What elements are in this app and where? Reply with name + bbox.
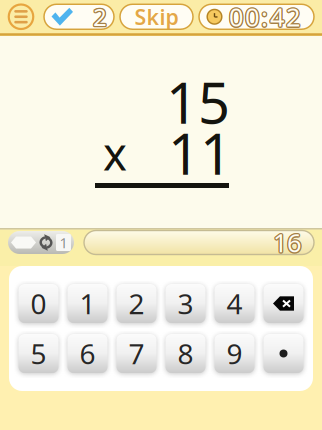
staticText: 0 — [244, 1, 258, 34]
staticText: 9 — [226, 335, 242, 372]
staticText: 16 — [272, 226, 300, 259]
staticText: 7 — [128, 335, 144, 372]
staticText: 2 — [285, 0, 299, 33]
staticText: 0 — [246, 0, 260, 33]
staticText: 16 — [272, 227, 300, 260]
button[interactable]: 2 — [116, 284, 156, 323]
staticText: 0 — [228, 0, 242, 33]
button[interactable]: Menu — [8, 4, 34, 30]
staticText: 15 — [166, 65, 230, 139]
staticText: 4 — [269, 0, 283, 33]
staticText: 4 — [270, 0, 284, 33]
staticText: 0 — [228, 1, 242, 34]
staticText: 16 — [273, 227, 301, 261]
button[interactable]: 8 — [165, 334, 205, 373]
staticText: 0 — [230, 0, 244, 33]
staticText: 2 — [92, 1, 106, 33]
staticText: 0 — [229, 1, 243, 35]
staticText: 0 — [230, 1, 244, 34]
staticText: 2 — [287, 1, 301, 34]
staticText: : — [262, 0, 269, 33]
staticText: 2 — [94, 1, 108, 33]
staticText: 16 — [273, 226, 301, 259]
button[interactable]: Delete — [263, 284, 303, 323]
staticText: 2 — [92, 0, 106, 32]
button[interactable]: 0 — [18, 284, 58, 323]
button[interactable]: 5 — [18, 334, 58, 373]
button[interactable]: Skip — [120, 4, 193, 29]
staticText: 0 — [244, 0, 258, 33]
staticText: : — [262, 1, 269, 34]
staticText: 3 — [177, 285, 193, 322]
staticText: 2 — [286, 0, 300, 33]
staticText: 4 — [269, 1, 283, 34]
staticText: 2 — [93, 1, 107, 33]
staticText: 11 — [168, 116, 232, 190]
staticText: 0 — [245, 1, 259, 35]
staticText: 0 — [229, 0, 243, 32]
staticText: 4 — [271, 1, 285, 34]
button[interactable]: 1 — [67, 284, 107, 323]
button[interactable]: 4 — [214, 284, 254, 323]
staticText: 0 — [228, 0, 242, 33]
staticText: : — [261, 1, 268, 35]
staticText: 2 — [286, 1, 300, 35]
staticText: 0 — [30, 285, 46, 322]
staticText: 2 — [93, 2, 107, 34]
staticText: 0 — [230, 0, 244, 33]
staticText: 2 — [287, 0, 301, 33]
staticText: : — [260, 0, 267, 33]
staticText: 2 — [93, 0, 107, 31]
button[interactable]: Swap operands — [8, 231, 74, 254]
button[interactable]: Decimal point — [263, 334, 303, 373]
staticText: 4 — [269, 0, 283, 33]
staticText: 4 — [270, 1, 284, 35]
staticText: 1 — [59, 233, 67, 252]
staticText: 5 — [30, 335, 46, 372]
button[interactable]: 9 — [214, 334, 254, 373]
button[interactable]: Timer — [199, 4, 314, 29]
staticText: 2 — [128, 285, 144, 322]
button[interactable]: 6 — [67, 334, 107, 373]
staticText: 16 — [273, 224, 301, 258]
staticText: x — [103, 123, 127, 183]
staticText: 2 — [92, 2, 106, 34]
staticText: 16 — [274, 225, 302, 258]
staticText: 2 — [286, 0, 300, 32]
button[interactable]: 3 — [165, 284, 205, 323]
staticText: 4 — [270, 0, 284, 32]
staticText: : — [262, 0, 269, 33]
staticText: 2 — [287, 0, 301, 33]
staticText: 16 — [272, 225, 300, 258]
staticText: 6 — [79, 335, 95, 372]
staticText: 2 — [285, 0, 299, 33]
staticText: 0 — [244, 0, 258, 33]
staticText: 16 — [274, 227, 302, 260]
staticText: 4 — [271, 0, 285, 33]
staticText: Skip — [134, 3, 178, 31]
staticText: 16 — [274, 226, 302, 259]
staticText: 0 — [246, 0, 260, 33]
staticText: 4 — [271, 0, 285, 33]
staticText: 2 — [285, 1, 299, 34]
button[interactable]: 7 — [116, 334, 156, 373]
staticText: : — [260, 0, 267, 33]
staticText: 8 — [177, 335, 193, 372]
staticText: : — [261, 0, 268, 32]
button[interactable]: 2 — [44, 4, 114, 29]
staticText: : — [260, 1, 267, 34]
staticText: : — [261, 0, 268, 33]
staticText: 0 — [245, 0, 259, 32]
staticText: 1 — [79, 285, 95, 322]
staticText: 2 — [94, 2, 108, 34]
staticText: 4 — [226, 285, 242, 322]
staticText: 0 — [246, 1, 260, 34]
staticText: 0 — [245, 0, 259, 33]
staticText: 0 — [229, 0, 243, 33]
staticText: 2 — [94, 0, 108, 32]
